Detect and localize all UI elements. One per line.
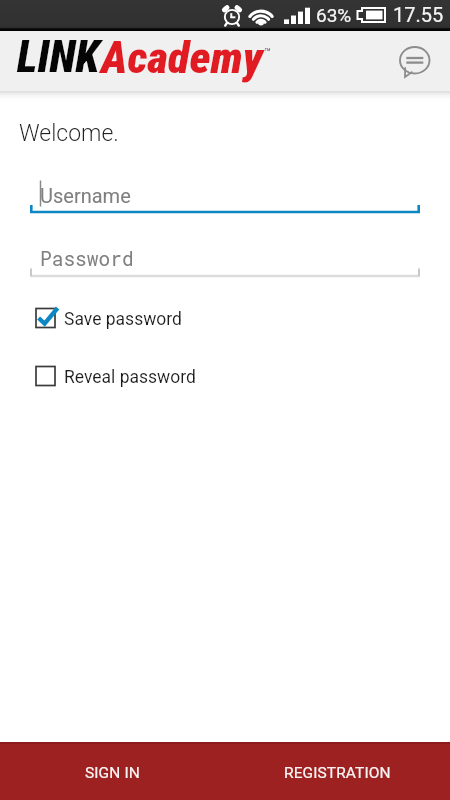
button[interactable]: Messages — [396, 40, 440, 84]
staticText: 63% — [316, 4, 352, 26]
staticText: Reveal password — [64, 367, 196, 388]
staticText: Save password — [64, 309, 182, 330]
button[interactable]: SIGN IN — [0, 744, 225, 800]
staticText: LINK — [17, 31, 100, 83]
button[interactable]: Username — [0, 183, 450, 219]
staticText: Welcome. — [19, 120, 119, 147]
staticText: ™ — [264, 46, 271, 59]
button[interactable]: Password — [0, 246, 450, 282]
button[interactable]: REGISTRATION — [225, 744, 450, 800]
staticText: Password — [40, 246, 134, 272]
staticText: REGISTRATION — [284, 764, 391, 782]
staticText: SIGN IN — [85, 764, 140, 782]
staticText: Username — [40, 184, 131, 207]
button[interactable]: Reveal password — [0, 357, 450, 397]
button[interactable]: Save password — [0, 299, 450, 339]
staticText: Academy — [101, 31, 263, 84]
staticText: 17.55 — [393, 3, 444, 26]
